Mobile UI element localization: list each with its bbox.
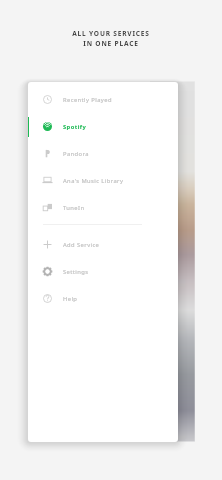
button[interactable]: Spotify	[28, 113, 178, 140]
button[interactable]: Pandora	[28, 140, 178, 167]
staticText: Ana's Music Library	[63, 177, 124, 185]
staticText: Help	[63, 295, 78, 303]
staticText: TuneIn	[63, 204, 85, 212]
button[interactable]: Settings	[28, 258, 178, 285]
button[interactable]: Recently Played	[28, 86, 178, 113]
staticText: IN ONE PLACE	[83, 39, 139, 48]
staticText: Add Service	[63, 241, 100, 249]
button[interactable]: Help	[28, 285, 178, 312]
button[interactable]: Ana's Music Library	[28, 167, 178, 194]
staticText: Settings	[63, 268, 89, 276]
button[interactable]: Add Service	[28, 231, 178, 258]
staticText: Recently Played	[63, 96, 112, 104]
staticText: ALL YOUR SERVICES	[72, 29, 150, 38]
button[interactable]: TuneIn	[28, 194, 178, 221]
staticText: Pandora	[63, 150, 89, 158]
staticText: Spotify	[63, 123, 87, 131]
